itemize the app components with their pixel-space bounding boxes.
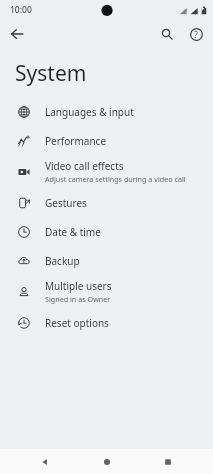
button[interactable]: Video call effects <box>0 155 213 188</box>
staticText: Adjust camera settings during a video ca… <box>45 174 186 184</box>
staticText: System <box>15 59 87 88</box>
button[interactable]: Home <box>90 449 124 474</box>
staticText: Date & time <box>45 225 101 239</box>
button[interactable]: Multiple users <box>0 275 213 308</box>
button[interactable]: Gestures <box>0 188 213 217</box>
button[interactable]: Reset options <box>0 308 213 337</box>
button[interactable]: Search <box>155 22 179 46</box>
staticText: Performance <box>45 134 107 148</box>
staticText: Reset options <box>45 316 109 330</box>
staticText: Signed in as Owner <box>45 294 111 304</box>
button[interactable]: Date & time <box>0 217 213 246</box>
staticText: 10:00 <box>10 4 32 16</box>
button[interactable]: Performance <box>0 126 213 155</box>
button[interactable]: Back <box>5 22 29 46</box>
button[interactable]: Recent apps <box>151 449 185 474</box>
button[interactable]: Help <box>184 22 208 46</box>
staticText: Gestures <box>45 196 87 210</box>
staticText: ? <box>194 29 198 40</box>
button[interactable]: Back <box>28 449 62 474</box>
staticText: Backup <box>45 254 80 268</box>
staticText: Languages & input <box>45 105 134 119</box>
button[interactable]: Backup <box>0 246 213 275</box>
staticText: Multiple users <box>45 279 112 293</box>
button[interactable]: Languages & input <box>0 97 213 126</box>
staticText: Video call effects <box>45 159 124 173</box>
